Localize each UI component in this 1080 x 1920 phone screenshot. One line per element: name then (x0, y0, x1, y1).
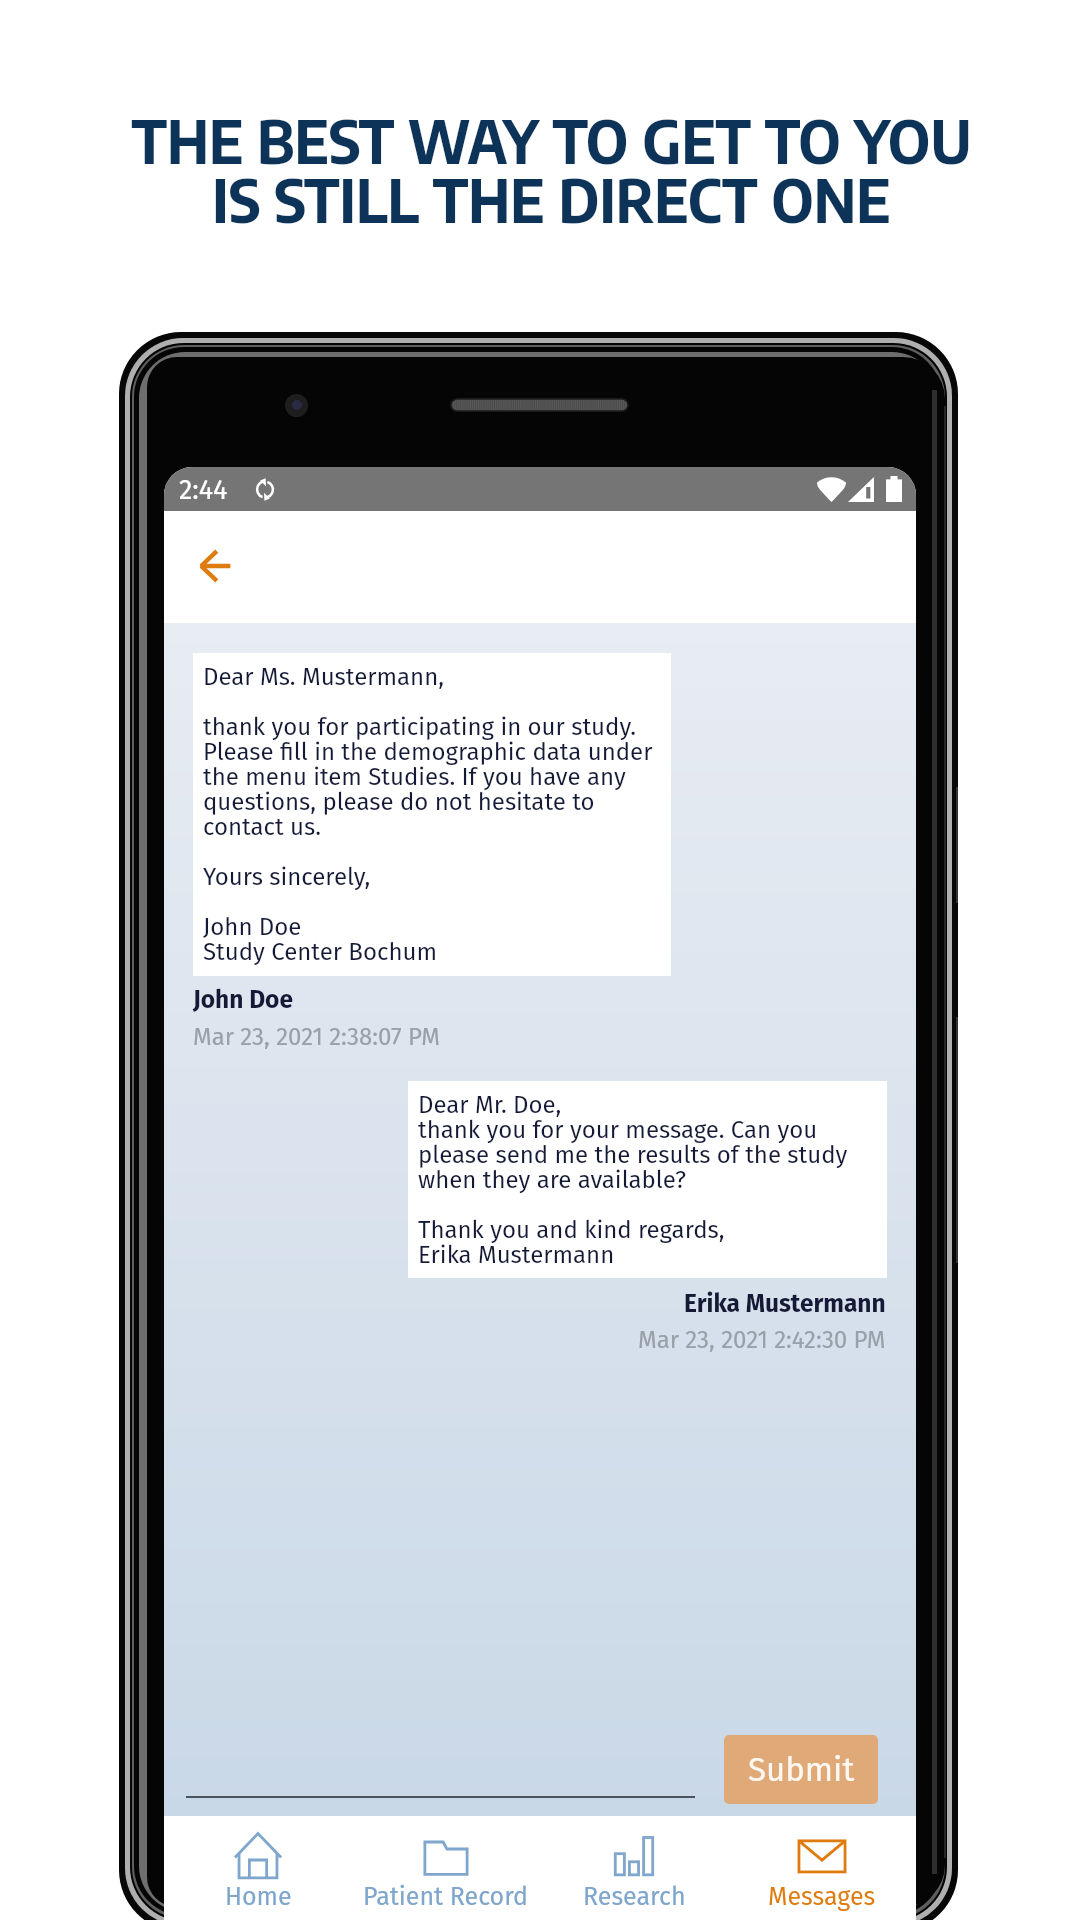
button[interactable]: Home (164, 1816, 352, 1920)
button[interactable]: Messages (728, 1816, 916, 1920)
button[interactable]: Submit (724, 1735, 878, 1804)
button[interactable]: Research (540, 1816, 728, 1920)
staticText: Messages (768, 1882, 876, 1912)
staticText: Erika Mustermann (684, 1289, 886, 1318)
staticText: THE BEST WAY TO GET TO YOU IS STILL THE … (131, 103, 972, 236)
staticText: Dear Ms. Mustermann, thank you for parti… (203, 663, 653, 967)
staticText: Mar 23, 2021 2:38:07 PM (193, 1023, 440, 1052)
button[interactable]: Dear Ms. Mustermann, thank you for parti… (193, 653, 671, 976)
staticText: Patient Record (363, 1882, 529, 1912)
button[interactable]: Dear Mr. Doe, thank you for your message… (408, 1081, 887, 1278)
staticText: 2:44 (179, 474, 228, 506)
button[interactable]: Patient Record (352, 1816, 540, 1920)
staticText: Submit (748, 1750, 855, 1790)
staticText: John Doe (193, 985, 293, 1014)
staticText: Research (583, 1882, 686, 1912)
staticText: Dear Mr. Doe, thank you for your message… (418, 1091, 848, 1270)
button[interactable]: Message input field (186, 1737, 695, 1798)
button[interactable]: Back (186, 536, 242, 596)
staticText: Mar 23, 2021 2:42:30 PM (638, 1326, 886, 1355)
staticText: Home (225, 1882, 292, 1912)
